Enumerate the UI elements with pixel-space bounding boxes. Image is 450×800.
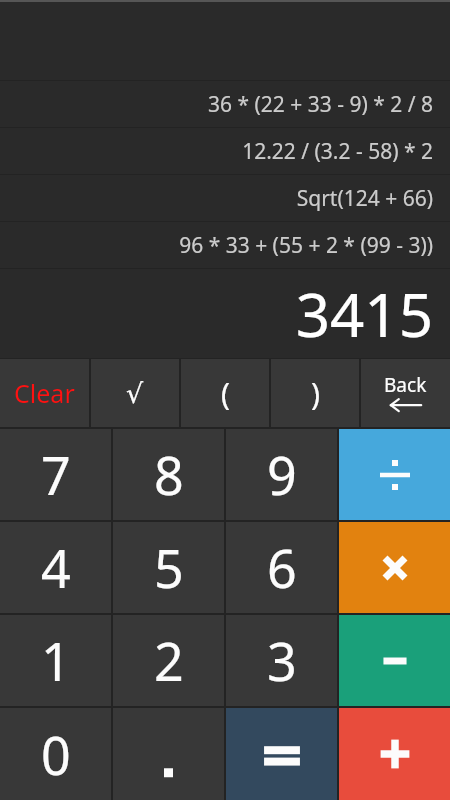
staticText: 8 [154, 439, 184, 510]
staticText: Back [384, 372, 427, 398]
button[interactable]: ( [181, 359, 269, 427]
button[interactable]: 0 [0, 708, 111, 800]
button[interactable]: 96 * 33 + (55 + 2 * (99 - 3)) [0, 222, 450, 268]
staticText: 3 [267, 625, 297, 696]
button[interactable]: Equals [226, 708, 337, 800]
button[interactable]: Divide [339, 429, 450, 520]
button[interactable]: Sqrt(124 + 66) [0, 175, 450, 221]
button[interactable]: 1 [0, 615, 111, 706]
button[interactable]: 5 [113, 522, 224, 613]
button[interactable]: ) [271, 359, 359, 427]
button[interactable]: 6 [226, 522, 337, 613]
staticText: √ [126, 378, 144, 409]
button[interactable]: Subtract [339, 615, 450, 706]
staticText: 12.22 / (3.2 - 58) * 2 [242, 137, 433, 166]
button[interactable]: 3 [226, 615, 337, 706]
staticText: 7 [41, 439, 71, 510]
button[interactable]: 7 [0, 429, 111, 520]
button[interactable]: 3415 [0, 269, 450, 358]
staticText: 0 [41, 719, 71, 790]
staticText: 96 * 33 + (55 + 2 * (99 - 3)) [179, 231, 433, 260]
button[interactable]: 8 [113, 429, 224, 520]
button[interactable]: Add [339, 708, 450, 800]
staticText: 2 [154, 625, 184, 696]
staticText: 5 [154, 532, 184, 603]
staticText: Sqrt(124 + 66) [296, 184, 433, 213]
staticText: 3415 [295, 273, 433, 355]
button[interactable]: 4 [0, 522, 111, 613]
button[interactable]: √ [91, 359, 179, 427]
button[interactable]: 36 * (22 + 33 - 9) * 2 / 8 [0, 81, 450, 127]
staticText: 9 [267, 439, 297, 510]
staticText: 1 [41, 625, 71, 696]
staticText: 4 [41, 532, 71, 603]
button[interactable]: 9 [226, 429, 337, 520]
button[interactable]: 2 [113, 615, 224, 706]
button[interactable]: Backspace [361, 359, 450, 427]
staticText: 36 * (22 + 33 - 9) * 2 / 8 [207, 90, 433, 119]
button[interactable]: 12.22 / (3.2 - 58) * 2 [0, 128, 450, 174]
staticText: 6 [267, 532, 297, 603]
button[interactable]: Multiply [339, 522, 450, 613]
button[interactable]: Clear [0, 359, 89, 427]
button[interactable]: Decimal point [113, 708, 224, 800]
staticText: Clear [14, 376, 75, 410]
staticText: ( [221, 373, 230, 414]
staticText: ) [311, 373, 320, 414]
